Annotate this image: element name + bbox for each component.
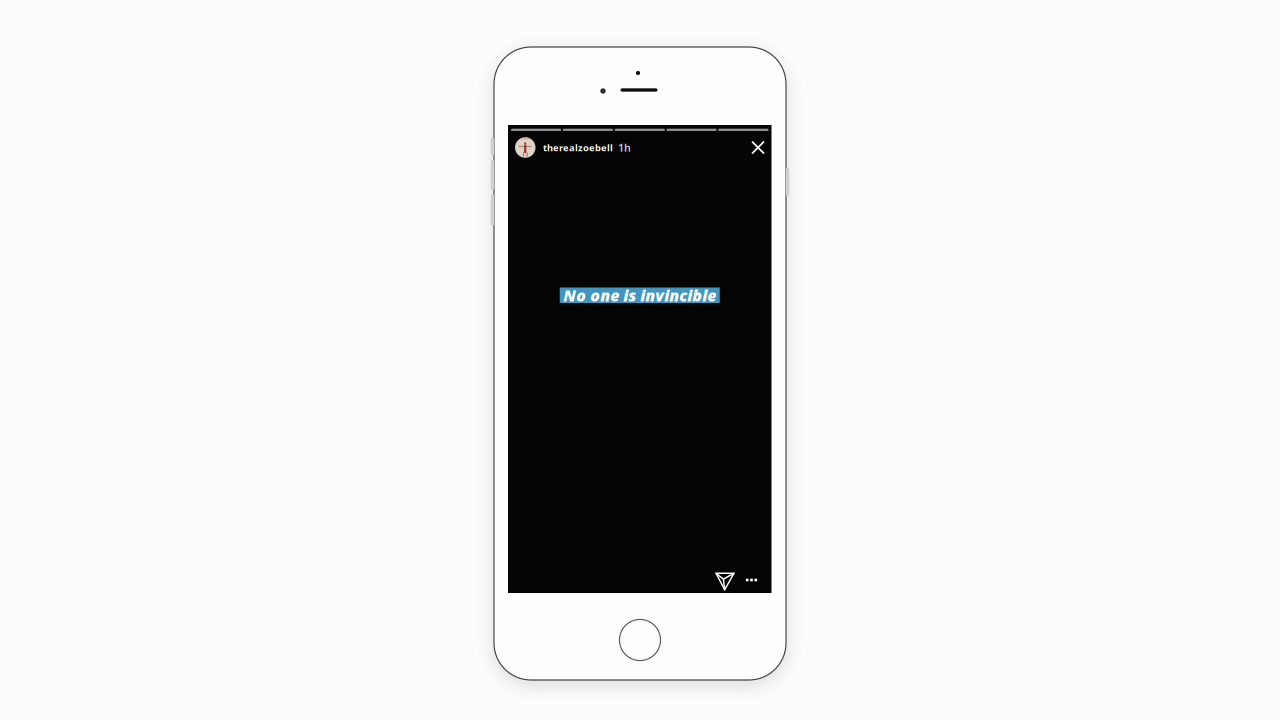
button[interactable]: Next story [508,125,771,593]
button[interactable]: therealzoebell [515,136,631,159]
staticText: No one is invincible [563,285,716,306]
button[interactable]: Home [619,619,660,660]
button[interactable]: More options [740,569,762,591]
button[interactable]: Close story [748,138,768,158]
button[interactable]: Send message [711,568,739,595]
staticText: 1h [618,140,631,155]
staticText: therealzoebell [543,141,613,154]
